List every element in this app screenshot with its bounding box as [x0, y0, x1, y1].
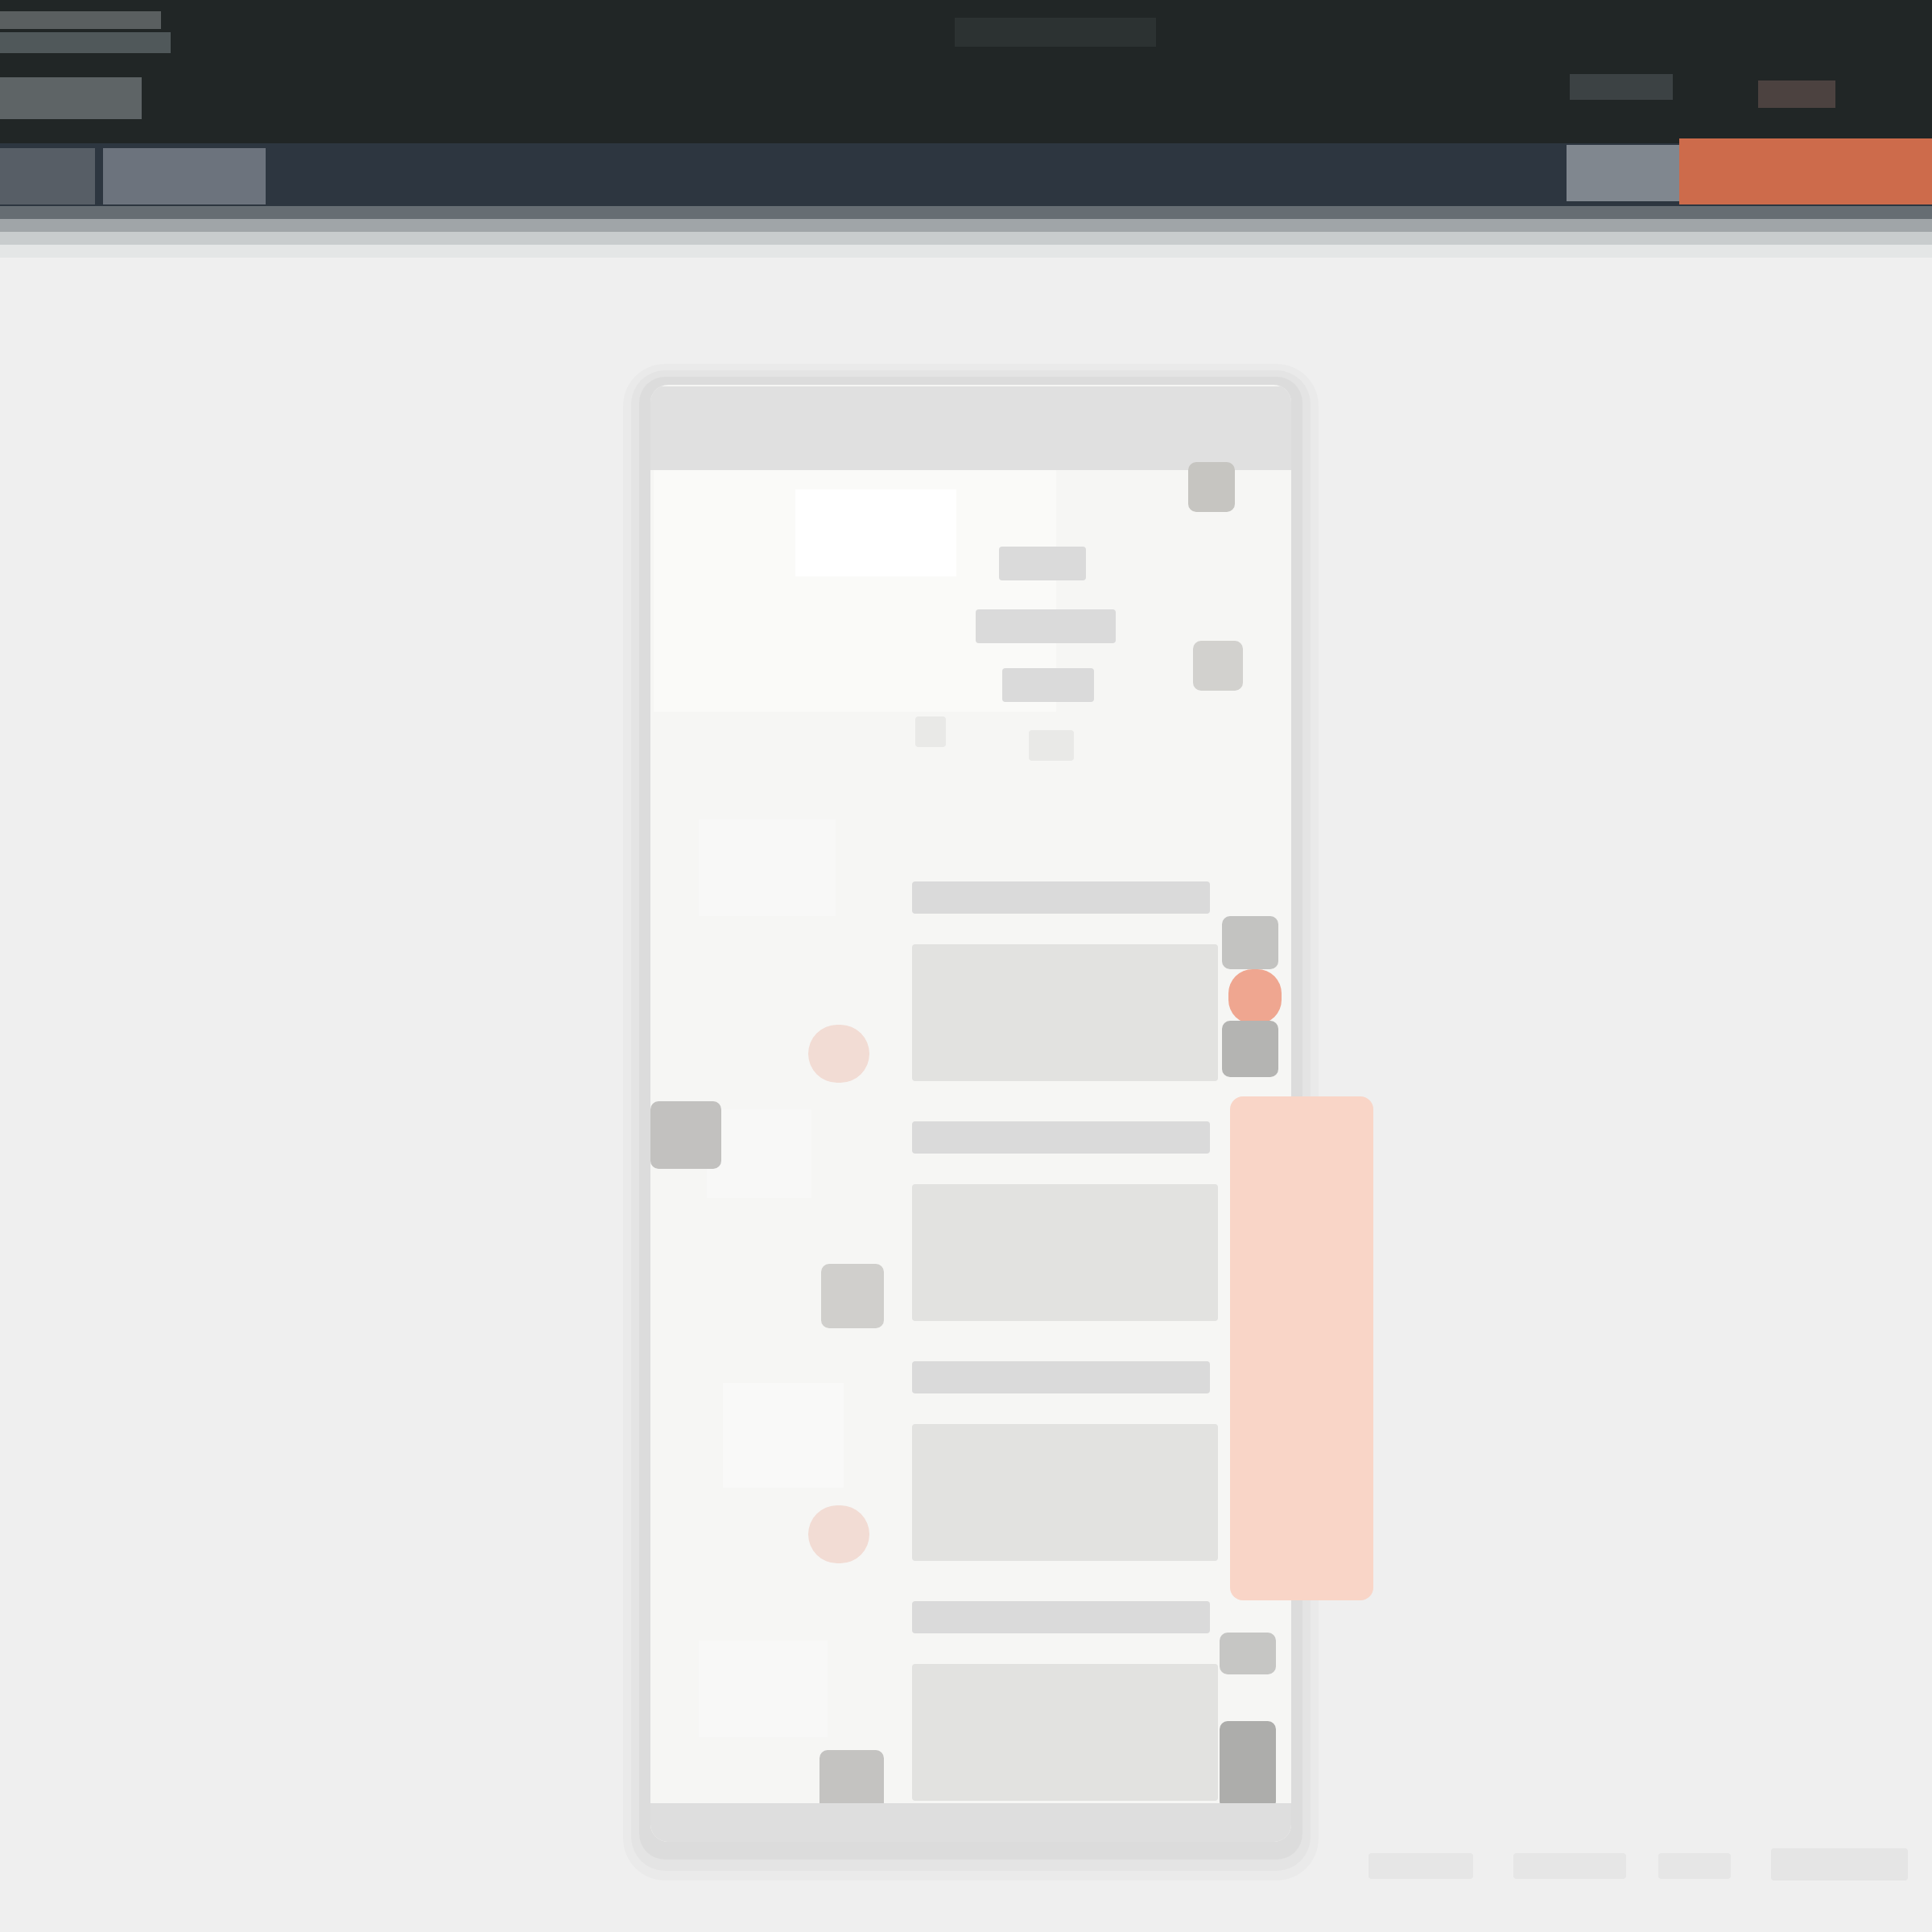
button[interactable]: Filter: [1193, 641, 1243, 691]
button[interactable]: Item icon: [821, 1264, 884, 1328]
button[interactable]: Item icon: [819, 1750, 884, 1816]
button[interactable]: [650, 386, 1291, 470]
button[interactable]: [896, 1580, 1234, 1814]
button[interactable]: More: [1220, 1721, 1276, 1810]
button[interactable]: [896, 1100, 1234, 1334]
button[interactable]: Favorite: [808, 1025, 869, 1083]
button[interactable]: [650, 1803, 1291, 1842]
button[interactable]: Highlighted panel: [1230, 1096, 1373, 1600]
button[interactable]: More: [1222, 1021, 1278, 1077]
button[interactable]: More: [1220, 1633, 1276, 1674]
button[interactable]: [896, 1340, 1234, 1574]
button[interactable]: More options: [1188, 462, 1235, 512]
button[interactable]: Open navigation drawer: [650, 1101, 721, 1169]
button[interactable]: More: [1222, 916, 1278, 969]
button[interactable]: [896, 861, 1234, 1094]
button[interactable]: Favorite: [808, 1505, 869, 1563]
